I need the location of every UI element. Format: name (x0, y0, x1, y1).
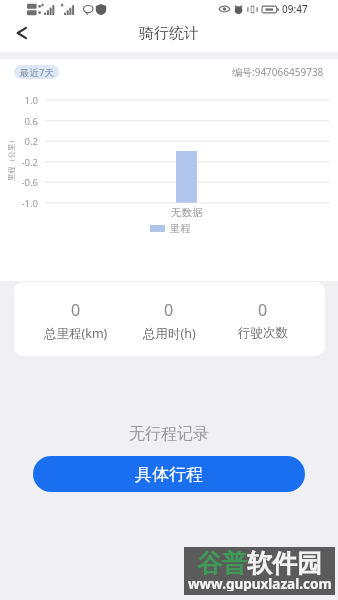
staticText: 里程 (170, 222, 191, 234)
button[interactable]: 最近7天 (14, 65, 59, 79)
button[interactable]: 0 (29, 282, 122, 342)
staticText: 骑行统计 (139, 24, 199, 43)
staticText: 具体行程 (135, 464, 203, 485)
staticText: 0.6 (0, 115, 38, 128)
staticText: 0 (71, 299, 81, 321)
staticText: 0 (164, 299, 174, 321)
staticText: -1.0 (0, 197, 38, 210)
staticText: 09:47 (282, 2, 308, 16)
staticText: 谷普 (197, 548, 247, 579)
button[interactable]: 0 (216, 282, 310, 341)
staticText: 最近7天 (20, 66, 54, 79)
staticText: 总里程(km) (44, 325, 108, 342)
button[interactable]: Back (0, 16, 40, 50)
staticText: 里程（公里） (7, 136, 16, 181)
staticText: 总用时(h) (143, 325, 196, 342)
staticText: www.gupuxlazal.com (188, 575, 332, 591)
staticText: 无行程记录 (0, 424, 338, 444)
staticText: 1.0 (0, 94, 38, 107)
button[interactable]: 具体行程 (33, 456, 305, 492)
staticText: 0 (258, 299, 268, 321)
staticText: -0.6 (0, 176, 38, 189)
staticText: 编号:947066459738 (232, 65, 324, 79)
button[interactable]: 0 (122, 282, 216, 342)
staticText: 无数据 (171, 206, 203, 219)
staticText: -0.2 (0, 156, 38, 169)
staticText: 行驶次数 (238, 325, 288, 341)
staticText: 0.2 (0, 135, 38, 148)
staticText: 软件园 (247, 548, 322, 579)
